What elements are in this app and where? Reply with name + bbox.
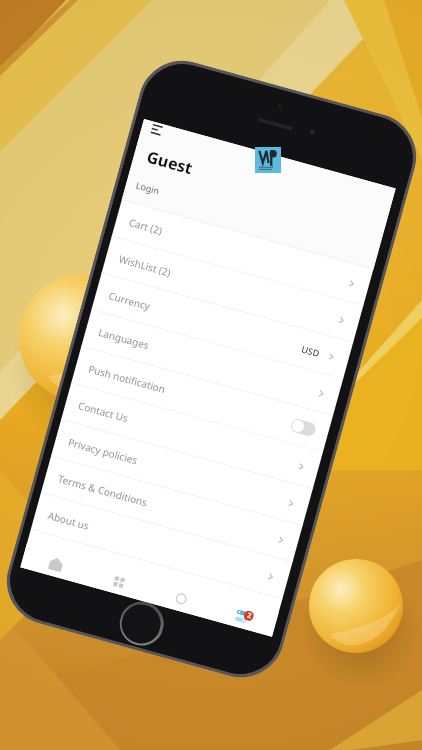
button[interactable]: Terms & Conditions [41,456,302,562]
button[interactable]: Login [135,179,161,197]
button[interactable]: Push notification [71,346,333,453]
staticText: Cart (2) [127,215,164,237]
button[interactable]: Categories [84,561,153,602]
button[interactable]: Menu [142,116,170,144]
button[interactable]: Currency [91,273,353,379]
button[interactable]: About us [31,493,292,599]
button[interactable]: Account [147,578,216,619]
button[interactable]: Cart (2) [112,200,373,306]
button[interactable]: Privacy policies [51,420,313,526]
staticText: Privacy policies [67,435,140,467]
button[interactable]: Home [20,543,91,585]
staticText: Guest [144,146,196,179]
staticText: Currency [107,288,152,313]
button[interactable]: Cart [209,595,279,637]
button[interactable]: Languages [81,310,343,416]
staticText: Languages [97,325,151,352]
button[interactable]: WishList (2) [101,237,363,343]
staticText: Terms & Conditions [57,471,149,509]
button[interactable]: Contact Us [61,383,323,489]
staticText: Push notification [87,362,168,396]
staticText: 2 [245,610,253,621]
staticText: About us [46,508,91,533]
staticText: Contact Us [77,398,130,425]
staticText: WishList (2) [117,252,173,280]
staticText: USD [300,342,322,359]
